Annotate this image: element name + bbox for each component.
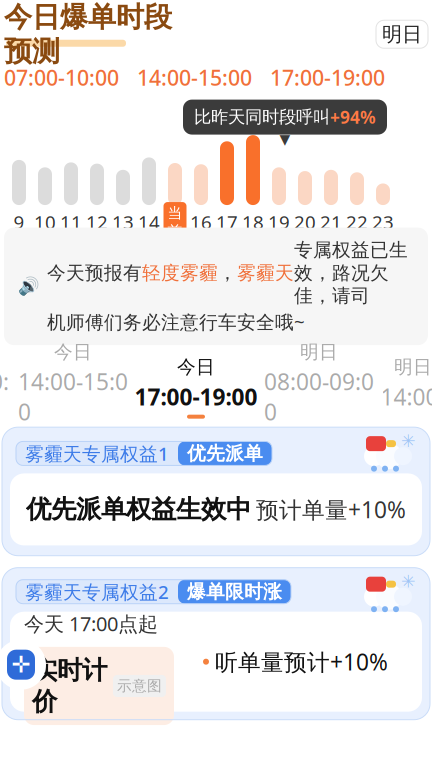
staticText: 12 bbox=[86, 210, 108, 234]
staticText: 11 bbox=[60, 210, 82, 234]
staticText: 9 bbox=[13, 210, 24, 234]
button[interactable]: 雾霾天专属权益2 bbox=[0, 568, 432, 720]
staticText: 20 bbox=[294, 210, 316, 234]
staticText: ✛ bbox=[11, 652, 30, 677]
staticText: 17:00-19:00 bbox=[134, 382, 257, 412]
staticText: 22 bbox=[346, 210, 368, 234]
staticText: 今天 17:00点起 bbox=[24, 610, 158, 637]
button[interactable]: 明日 bbox=[376, 20, 428, 48]
staticText: 雾霾天专属权益1 bbox=[25, 441, 169, 466]
staticText: ‹ bbox=[8, 0, 23, 4]
staticText: 明日 bbox=[382, 22, 422, 47]
staticText: 14:00-15:00 bbox=[137, 63, 252, 92]
staticText: 今日 bbox=[177, 356, 215, 378]
staticText: 轻度雾霾 bbox=[142, 261, 218, 284]
staticText: ， bbox=[218, 261, 237, 284]
staticText: 0-10:00 bbox=[0, 366, 9, 427]
staticText: 明日 bbox=[394, 356, 432, 378]
button[interactable]: 安全保障 bbox=[0, 640, 46, 690]
staticText: 雾霾天专属权益2 bbox=[25, 579, 169, 604]
staticText: 07:00-10:00 bbox=[4, 63, 119, 92]
staticText: 专属权益已生效，路况欠佳，请司 bbox=[294, 239, 408, 307]
staticText: 08:00-09:00 bbox=[264, 366, 374, 427]
button[interactable]: 雾霾天专属权益1 bbox=[0, 427, 432, 556]
staticText: 听单量预计+10% bbox=[215, 647, 388, 677]
staticText: ✳ bbox=[401, 572, 416, 591]
staticText: 雾霾天 bbox=[237, 261, 294, 284]
staticText: 19 bbox=[268, 210, 290, 234]
staticText: 当前 bbox=[167, 204, 182, 240]
staticText: 14 bbox=[138, 210, 160, 234]
staticText: 爆单限时涨 bbox=[187, 580, 282, 603]
staticText: 23 bbox=[372, 210, 394, 234]
staticText: 预计单量+10% bbox=[256, 494, 406, 524]
staticText: 明日 bbox=[300, 341, 338, 363]
staticText: ▾ bbox=[279, 126, 290, 151]
staticText: 今日 bbox=[54, 341, 92, 363]
staticText: ✳ bbox=[401, 431, 416, 451]
staticText: +94% bbox=[330, 106, 376, 129]
staticText: 17:00-19:00 bbox=[270, 63, 385, 92]
staticText: 14:00- bbox=[380, 382, 432, 412]
staticText: 14:00-15:00 bbox=[18, 366, 128, 427]
staticText: 比昨天同时段呼叫 bbox=[194, 106, 330, 128]
staticText: 17 bbox=[216, 210, 238, 234]
staticText: 优先派单 bbox=[187, 442, 263, 465]
staticText: 机师傅们务必注意行车安全哦~ bbox=[47, 309, 305, 334]
staticText: 16 bbox=[190, 210, 212, 234]
staticText: 今天预报有 bbox=[47, 261, 142, 284]
staticText: 今日爆单时段预测 bbox=[4, 0, 172, 69]
staticText: 21 bbox=[320, 210, 342, 234]
staticText: 优先派单权益生效中 bbox=[26, 494, 251, 525]
staticText: 10 bbox=[34, 210, 56, 234]
staticText: 13 bbox=[112, 210, 134, 234]
staticText: 示意图 bbox=[117, 677, 162, 695]
staticText: 实时计价 bbox=[32, 655, 107, 717]
staticText: 🔊 bbox=[18, 276, 40, 296]
staticText: 18 bbox=[242, 210, 264, 234]
